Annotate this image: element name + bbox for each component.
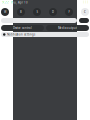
- staticText: F: [68, 10, 69, 14]
- button[interactable]: C: [81, 8, 89, 16]
- button[interactable]: Device control: [1, 25, 44, 31]
- button[interactable]: B: [17, 8, 25, 16]
- staticText: C: [84, 10, 86, 14]
- staticText: Notification settings: [7, 33, 35, 36]
- staticText: D: [52, 10, 54, 14]
- staticText: 9:22 Thu, Apr 10: [2, 1, 28, 4]
- staticText: Device control: [13, 26, 32, 30]
- button[interactable]: F: [65, 8, 73, 16]
- button[interactable]: Media output: [46, 25, 89, 31]
- staticText: W: [4, 10, 6, 14]
- button[interactable]: W: [1, 8, 9, 16]
- staticText: B: [20, 10, 22, 14]
- button[interactable]: S: [33, 8, 41, 16]
- staticText: l l l: [83, 1, 88, 4]
- button[interactable]: Brightness: [1, 18, 77, 23]
- button[interactable]: D: [49, 8, 57, 16]
- button[interactable]: Notification settings: [1, 32, 89, 37]
- staticText: Media output: [58, 26, 77, 30]
- staticText: S: [36, 10, 37, 14]
